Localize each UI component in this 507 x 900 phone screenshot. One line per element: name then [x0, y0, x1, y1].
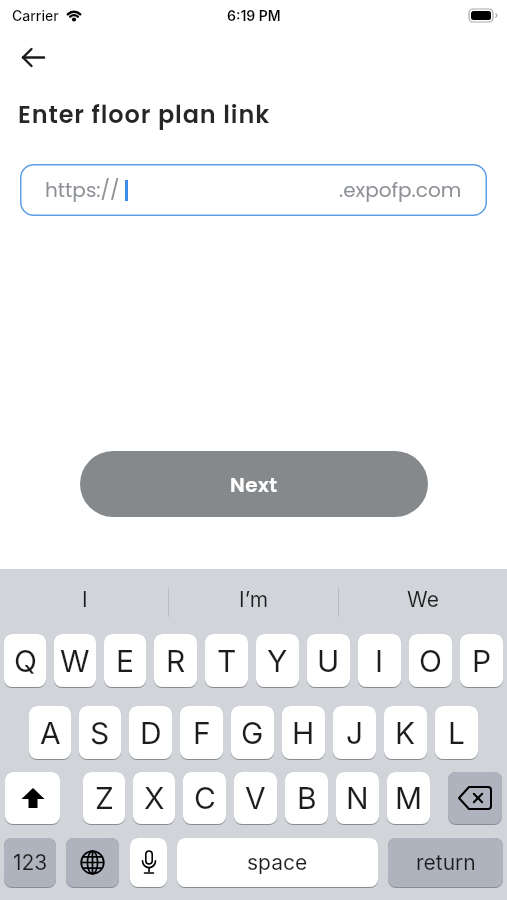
button[interactable]: S — [79, 706, 121, 760]
button[interactable]: J — [333, 706, 376, 760]
button[interactable]: A — [29, 706, 71, 760]
staticText: 123 — [13, 850, 48, 875]
button[interactable]: https:// — [20, 164, 487, 216]
staticText: C — [194, 780, 216, 816]
staticText: We — [407, 587, 439, 612]
staticText: V — [245, 780, 266, 816]
staticText: space — [247, 850, 308, 875]
staticText: P — [472, 643, 492, 679]
button[interactable] — [14, 40, 52, 74]
button[interactable]: T — [205, 634, 248, 688]
staticText: D — [140, 715, 162, 751]
button[interactable] — [130, 838, 167, 888]
staticText: 6:19 PM — [227, 7, 281, 24]
button[interactable]: I’m — [169, 569, 338, 634]
staticText: Next — [230, 471, 278, 499]
staticText: https:// — [45, 176, 120, 204]
staticText: M — [395, 780, 423, 816]
staticText: B — [297, 780, 317, 816]
staticText: Q — [14, 643, 37, 679]
button[interactable]: H — [282, 706, 325, 760]
button[interactable]: W — [54, 634, 96, 688]
button[interactable]: We — [338, 569, 507, 634]
button[interactable]: O — [409, 634, 452, 688]
button[interactable]: Next — [80, 451, 428, 517]
button[interactable]: I — [358, 634, 401, 688]
button[interactable]: E — [104, 634, 146, 688]
button[interactable]: 123 — [4, 838, 56, 888]
button[interactable]: G — [231, 706, 274, 760]
staticText: L — [448, 715, 465, 751]
button[interactable]: X — [133, 772, 175, 825]
button[interactable]: K — [384, 706, 427, 760]
staticText: N — [346, 780, 369, 816]
staticText: Carrier — [12, 7, 59, 24]
staticText: return — [416, 850, 476, 875]
button[interactable]: R — [154, 634, 197, 688]
button[interactable]: P — [460, 634, 503, 688]
button[interactable]: C — [183, 772, 226, 825]
button[interactable]: N — [336, 772, 379, 825]
button[interactable]: L — [435, 706, 478, 760]
button[interactable]: M — [387, 772, 430, 825]
button[interactable]: F — [180, 706, 223, 760]
staticText: W — [60, 643, 90, 679]
staticText: F — [193, 715, 211, 751]
staticText: G — [241, 715, 264, 751]
button[interactable]: B — [285, 772, 328, 825]
button[interactable]: Q — [4, 634, 46, 688]
staticText: E — [116, 643, 135, 679]
staticText: Y — [267, 643, 288, 679]
staticText: U — [317, 643, 340, 679]
staticText: I’m — [239, 587, 269, 612]
button[interactable]: V — [234, 772, 277, 825]
button[interactable] — [5, 772, 60, 825]
staticText: S — [90, 715, 110, 751]
staticText: A — [40, 715, 61, 751]
staticText: J — [346, 715, 364, 751]
staticText: I — [82, 587, 88, 612]
staticText: H — [292, 715, 315, 751]
staticText: T — [217, 643, 237, 679]
button[interactable]: Z — [83, 772, 125, 825]
button[interactable]: space — [177, 838, 378, 888]
staticText: K — [395, 715, 416, 751]
button[interactable]: I — [0, 569, 169, 634]
button[interactable]: Y — [256, 634, 299, 688]
staticText: R — [166, 643, 186, 679]
staticText: Enter floor plan link — [18, 98, 271, 132]
staticText: O — [419, 643, 442, 679]
staticText: .expofp.com — [339, 176, 462, 204]
button[interactable]: D — [129, 706, 172, 760]
button[interactable]: U — [307, 634, 350, 688]
staticText: X — [144, 780, 165, 816]
button[interactable] — [66, 838, 119, 888]
staticText: Z — [95, 780, 114, 816]
staticText: I — [375, 643, 384, 679]
button[interactable] — [448, 772, 502, 825]
button[interactable]: return — [388, 838, 503, 888]
